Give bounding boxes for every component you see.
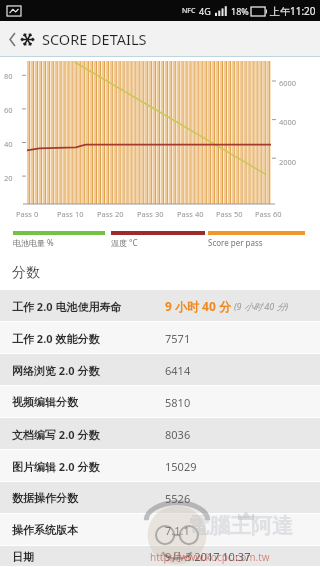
staticText: Pass 0: [16, 209, 39, 219]
staticText: Score per pass: [208, 237, 263, 248]
staticText: 7.1.1: [165, 523, 190, 538]
staticText: SCORE DETAILS: [42, 29, 147, 49]
staticText: 电池电量 %: [13, 237, 54, 248]
staticText: 图片编辑 2.0 分数: [12, 459, 100, 474]
staticText: 電腦王阿達: [188, 513, 293, 539]
staticText: 工作 2.0 电池使用寿命: [12, 299, 122, 314]
staticText: Pass 30: [137, 209, 164, 219]
staticText: 文档编写 2.0 分数: [12, 427, 100, 442]
staticText: 网络浏览 2.0 分数: [12, 363, 100, 378]
staticText: 9 小时 40 分: [165, 298, 231, 314]
button[interactable]: 文档编写 2.0 分数: [0, 418, 320, 450]
button[interactable]: 网络浏览 2.0 分数: [0, 354, 320, 386]
staticText: 80: [4, 71, 13, 81]
staticText: 5526: [165, 491, 191, 506]
staticText: 数据操作分数: [12, 491, 78, 505]
staticText: 工作 2.0 效能分数: [12, 331, 100, 346]
staticText: 视频编辑分数: [12, 395, 78, 409]
staticText: 日期: [12, 550, 34, 564]
staticText: 60: [4, 105, 13, 115]
staticText: NFC: [182, 6, 196, 16]
button[interactable]: 工作 2.0 效能分数: [0, 322, 320, 354]
staticText: Pass 50: [216, 209, 243, 219]
button[interactable]: 工作 2.0 电池使用寿命: [0, 290, 320, 322]
button[interactable]: 图片编辑 2.0 分数: [0, 450, 320, 482]
staticText: Pass 10: [57, 209, 84, 219]
staticText: 15029: [165, 459, 197, 474]
button[interactable]: 日期: [0, 546, 320, 567]
staticText: (9 小时 40 分): [234, 300, 289, 312]
staticText: 上午11:20: [270, 4, 316, 18]
staticText: 6000: [279, 78, 297, 88]
staticText: 4000: [279, 117, 297, 127]
staticText: 18%: [231, 5, 249, 17]
staticText: 操作系统版本: [12, 523, 78, 537]
staticText: http://www.kocpc.com.tw: [150, 550, 270, 564]
button[interactable]: 视频编辑分数: [0, 386, 320, 418]
staticText: 9月 3 2017 10:37: [165, 549, 251, 564]
staticText: 40: [4, 139, 13, 149]
staticText: 8036: [165, 427, 191, 442]
staticText: 2000: [279, 157, 297, 167]
staticText: Pass 60: [255, 209, 282, 219]
button[interactable]: 数据操作分数: [0, 482, 320, 514]
staticText: 4G: [199, 5, 211, 17]
staticText: 6414: [165, 363, 191, 378]
staticText: Pass 40: [177, 209, 204, 219]
staticText: 20: [4, 173, 13, 183]
staticText: Pass 20: [97, 209, 124, 219]
staticText: 5810: [165, 395, 191, 410]
button[interactable]: 操作系统版本: [0, 514, 320, 546]
staticText: 分数: [12, 264, 40, 282]
button[interactable]: Back: [4, 21, 20, 57]
staticText: 温度 °C: [111, 237, 138, 248]
staticText: 7571: [165, 331, 191, 346]
